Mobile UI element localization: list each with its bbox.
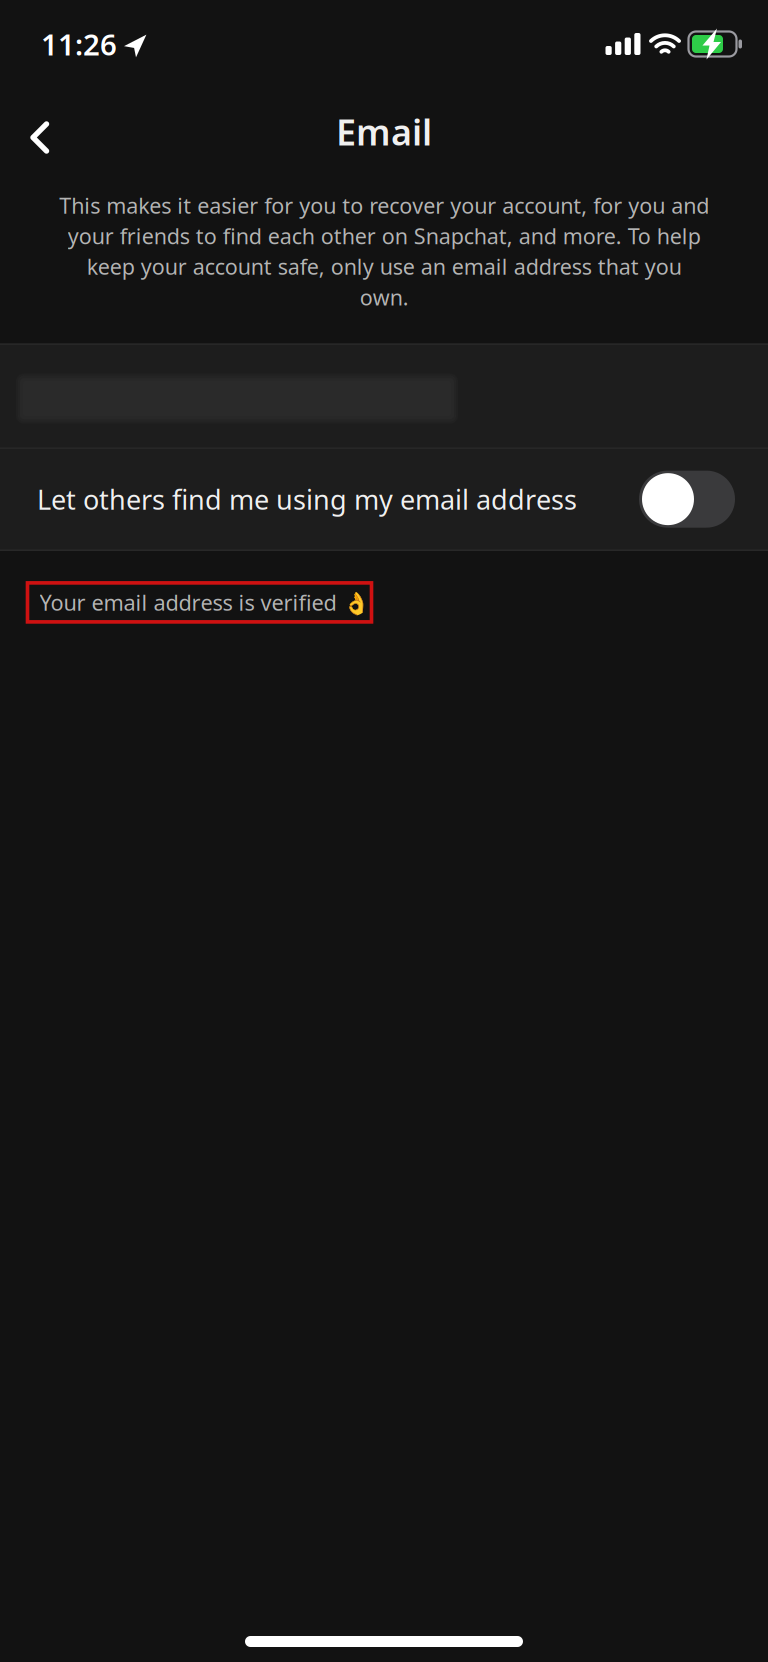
staticText: Email [336, 108, 432, 155]
button[interactable]: Let others find me using my email addres… [0, 449, 768, 549]
staticText: 11:26 [41, 24, 117, 63]
staticText: This makes it easier for you to recover … [59, 191, 709, 311]
button[interactable]: Back [0, 90, 72, 173]
button[interactable]: Email address [0, 345, 768, 447]
staticText: Your email address is verified 👌 [39, 588, 369, 617]
staticText: Let others find me using my email addres… [37, 481, 577, 517]
